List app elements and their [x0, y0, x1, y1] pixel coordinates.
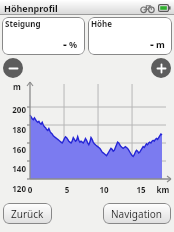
staticText: 160 — [0, 144, 26, 155]
button[interactable]: Navigation — [103, 203, 171, 224]
staticText: 180 — [0, 124, 26, 135]
staticText: - — [63, 36, 67, 52]
button[interactable]: Zurück — [3, 203, 52, 224]
staticText: 200 — [0, 104, 26, 115]
staticText: Höhe — [91, 18, 113, 29]
button[interactable]: Höhe — [88, 17, 172, 55]
button[interactable]: Fahrrad Modus — [140, 3, 155, 13]
staticText: 0 — [23, 184, 37, 195]
staticText: 120 — [0, 183, 26, 194]
staticText: - — [150, 36, 154, 52]
staticText: 140 — [0, 163, 26, 174]
staticText: 10 — [97, 184, 111, 195]
button[interactable]: Verkleinern — [3, 58, 23, 78]
staticText: Navigation — [111, 207, 163, 221]
staticText: Zurück — [11, 207, 44, 221]
button[interactable]: Vergrößern — [151, 58, 171, 78]
staticText: m — [156, 38, 165, 50]
staticText: Steigung — [5, 18, 41, 29]
button[interactable]: Steigung — [2, 17, 85, 55]
staticText: km — [154, 184, 172, 195]
staticText: m — [5, 81, 29, 92]
staticText: % — [69, 38, 78, 50]
button[interactable]: Akku — [158, 4, 171, 12]
staticText: Höhenprofil — [4, 2, 58, 14]
staticText: 15 — [134, 184, 148, 195]
staticText: 5 — [60, 184, 74, 195]
